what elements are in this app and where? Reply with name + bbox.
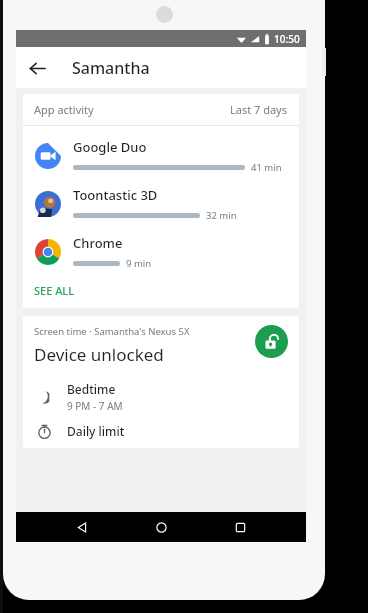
- staticText: Screen time · Samantha's Nexus 5X: [34, 325, 190, 338]
- staticText: Device unlocked: [34, 343, 164, 366]
- staticText: Google Duo: [73, 138, 147, 156]
- staticText: Daily limit: [67, 423, 125, 439]
- button[interactable]: Google Duo: [23, 132, 299, 180]
- button[interactable]: Toontastic 3D: [23, 180, 299, 228]
- staticText: App activity: [34, 102, 94, 117]
- staticText: Last 7 days: [230, 102, 288, 117]
- staticText: Bedtime: [67, 381, 116, 397]
- staticText: 9 PM - 7 AM: [67, 399, 123, 413]
- button[interactable]: Recents: [227, 514, 253, 540]
- staticText: 10:50: [274, 32, 300, 46]
- button[interactable]: Bedtime: [23, 380, 299, 414]
- button[interactable]: Back: [22, 53, 52, 83]
- staticText: 32 min: [206, 209, 237, 222]
- button[interactable]: Device unlocked: [255, 325, 288, 358]
- staticText: Toontastic 3D: [73, 186, 158, 204]
- button[interactable]: Back: [69, 514, 95, 540]
- staticText: 9 min: [126, 257, 152, 270]
- staticText: Chrome: [73, 234, 123, 252]
- button[interactable]: Chrome: [23, 228, 299, 276]
- button[interactable]: Home: [148, 514, 174, 540]
- staticText: Samantha: [72, 57, 150, 79]
- button[interactable]: SEE ALL: [23, 276, 299, 304]
- button[interactable]: Daily limit: [23, 414, 299, 448]
- staticText: 41 min: [251, 161, 282, 174]
- staticText: SEE ALL: [34, 283, 75, 298]
